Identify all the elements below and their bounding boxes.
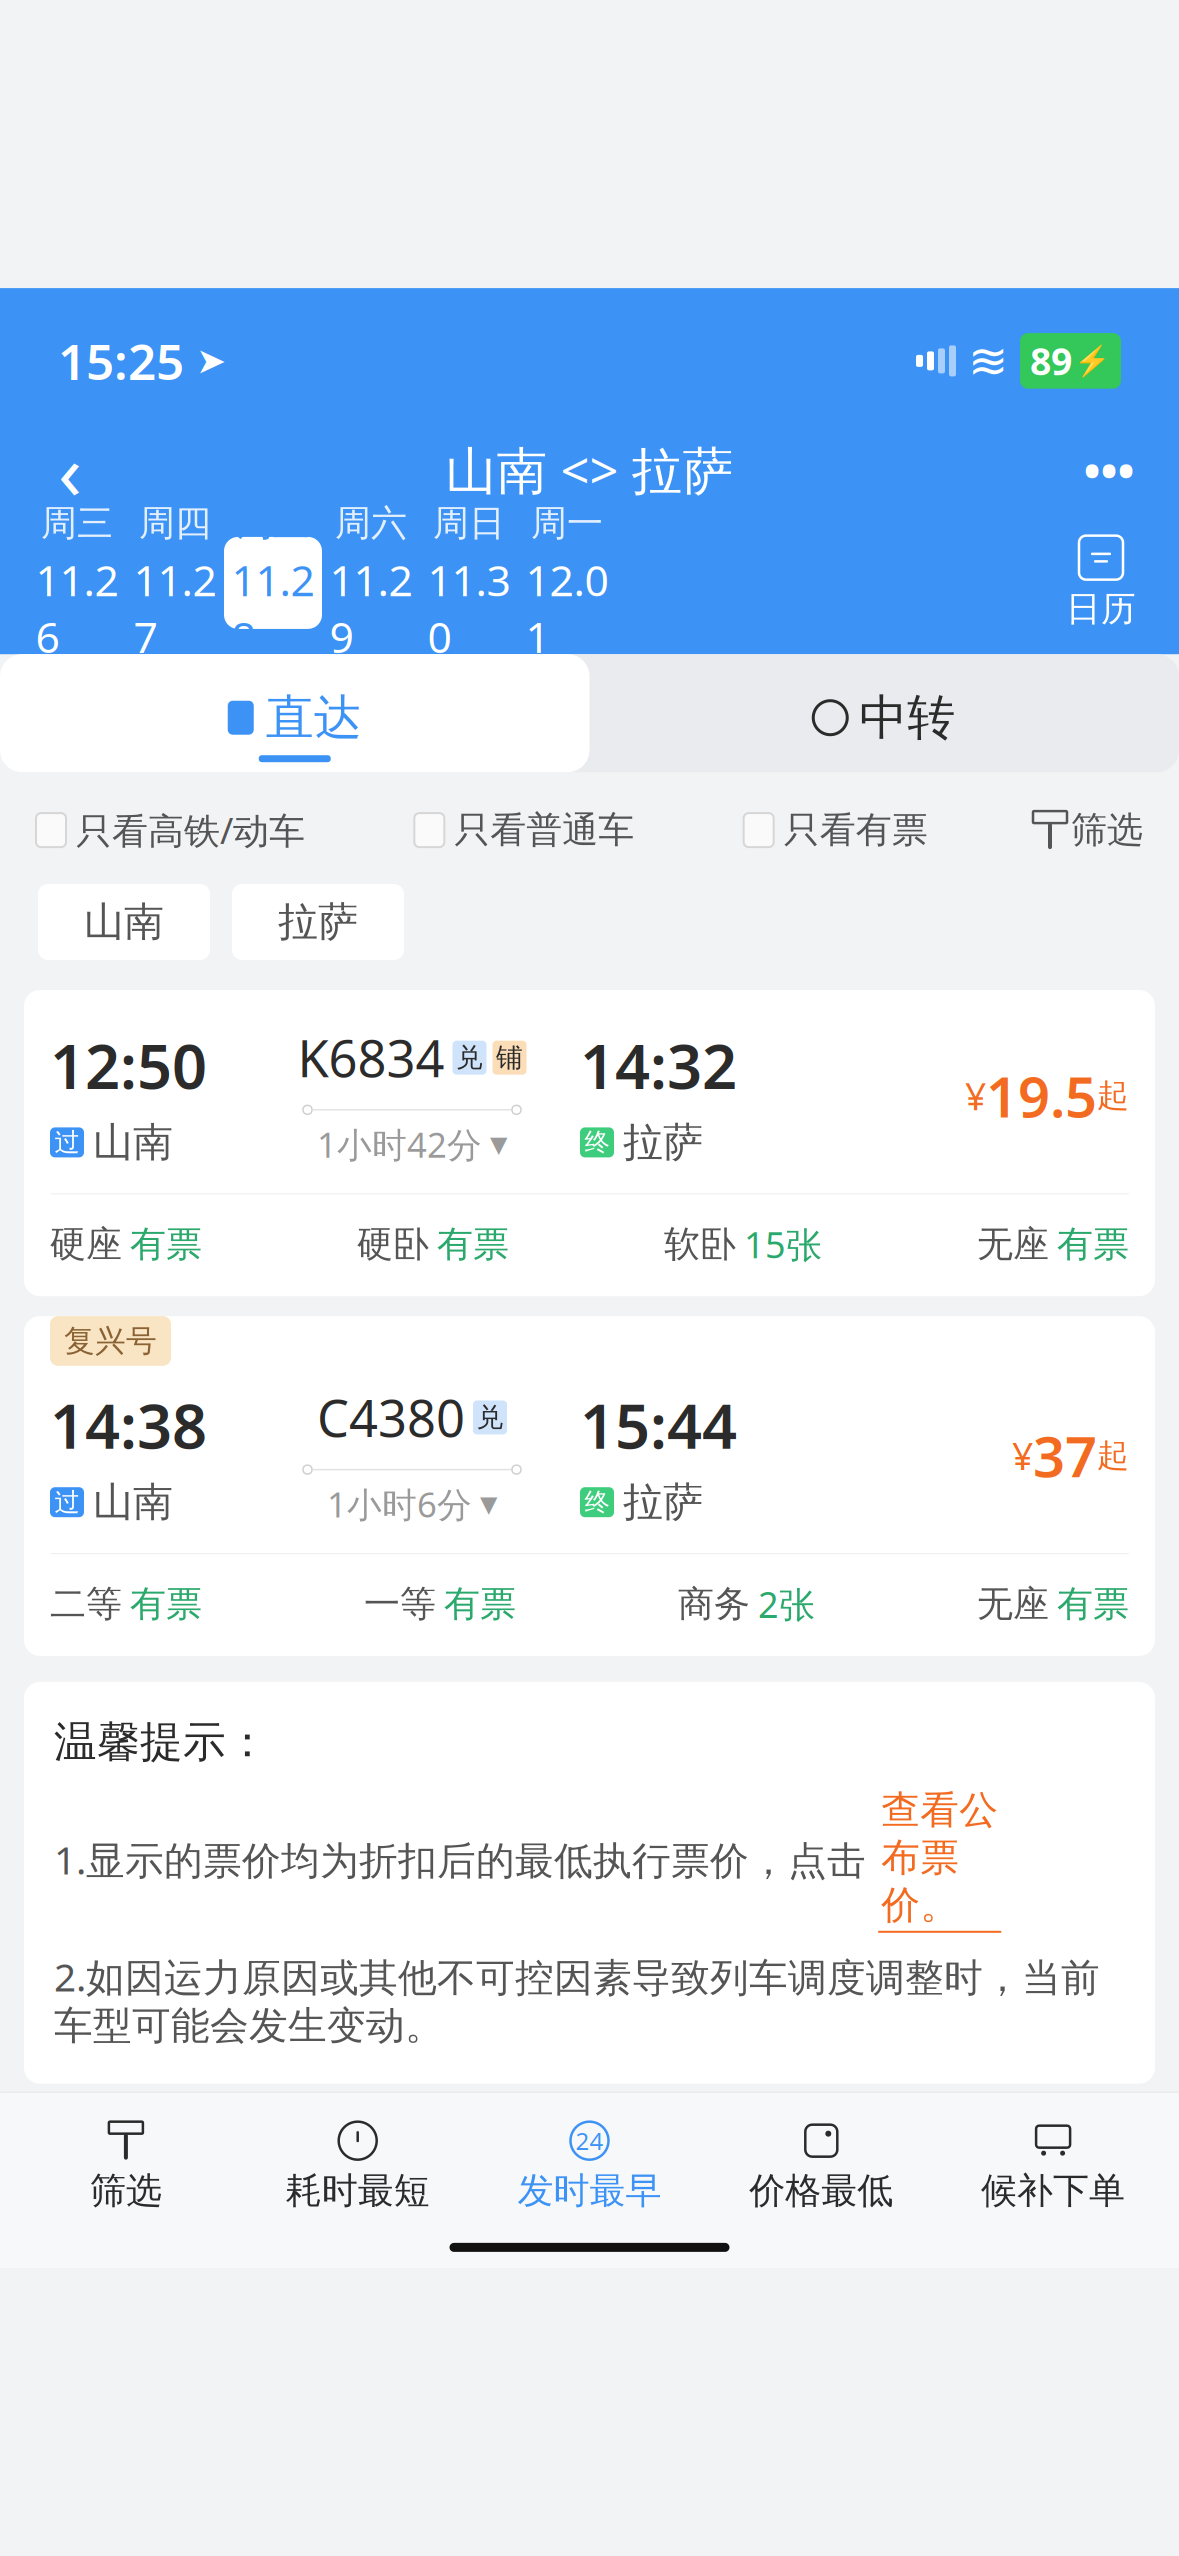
staticText: 有票 bbox=[437, 1222, 509, 1266]
staticText: 直达 bbox=[266, 688, 362, 747]
staticText: 终 bbox=[584, 1127, 609, 1158]
staticText: 二等 bbox=[50, 1582, 122, 1626]
button[interactable]: 筛选 bbox=[1037, 808, 1143, 852]
staticText: 有票 bbox=[444, 1582, 516, 1626]
staticText: 只看有票 bbox=[784, 808, 928, 852]
staticText: 复兴号 bbox=[64, 1322, 157, 1360]
staticText: 起 bbox=[1097, 1076, 1129, 1115]
staticText: C4380 bbox=[317, 1384, 465, 1451]
button[interactable]: 更多 bbox=[1069, 430, 1149, 510]
button[interactable]: 24 bbox=[474, 2111, 705, 2221]
button[interactable]: 周六 bbox=[322, 537, 420, 629]
staticText: 商务 bbox=[678, 1582, 750, 1626]
staticText: 2.如因运力原因或其他不可控因素导致列车调度调整时，当前车型可能会发生变动。 bbox=[54, 1951, 1100, 2050]
staticText: 山南 bbox=[93, 1478, 173, 1527]
staticText: 14:38 bbox=[50, 1384, 207, 1466]
staticText: 拉萨 bbox=[623, 1478, 703, 1527]
staticText: ≋ bbox=[968, 334, 1008, 388]
staticText: 候补下单 bbox=[981, 2169, 1125, 2213]
staticText: ➤ bbox=[196, 340, 226, 381]
staticText: 周一 bbox=[531, 501, 603, 545]
staticText: K6834 bbox=[297, 1024, 444, 1091]
button[interactable]: 候补下单 bbox=[937, 2111, 1169, 2221]
staticText: 15张 bbox=[744, 1220, 822, 1268]
staticText: ••• bbox=[1083, 439, 1134, 500]
staticText: 无座 bbox=[977, 1582, 1049, 1626]
button[interactable]: 拉萨 bbox=[232, 884, 404, 960]
button[interactable]: 只看有票 bbox=[744, 808, 928, 852]
staticText: 山南 bbox=[93, 1118, 173, 1167]
staticText: ▼ bbox=[490, 1131, 507, 1157]
staticText: 发时最早 bbox=[517, 2169, 661, 2213]
staticText: ¥ bbox=[1012, 1431, 1033, 1480]
button[interactable]: 周日 bbox=[420, 537, 518, 629]
button[interactable]: 耗时最短 bbox=[242, 2111, 474, 2221]
staticText: 周五 bbox=[237, 501, 309, 545]
button[interactable]: 12:50 bbox=[24, 990, 1155, 1296]
button[interactable]: 周一 bbox=[518, 537, 616, 629]
staticText: 硬卧 bbox=[357, 1222, 429, 1266]
staticText: ¥ bbox=[965, 1071, 986, 1120]
button[interactable]: 日历 bbox=[1051, 536, 1151, 630]
staticText: ▼ bbox=[480, 1491, 497, 1517]
staticText: 11.27 bbox=[133, 551, 216, 665]
staticText: 起 bbox=[1097, 1436, 1129, 1475]
button[interactable]: 价格最低 bbox=[705, 2111, 937, 2221]
button[interactable]: 周五 bbox=[224, 537, 322, 629]
button[interactable]: 查看公布票价。 bbox=[878, 1786, 1001, 1933]
staticText: 山南 bbox=[84, 897, 164, 946]
staticText: 1小时42分 bbox=[317, 1121, 482, 1167]
staticText: 过 bbox=[54, 1487, 79, 1518]
staticText: 周日 bbox=[433, 501, 505, 545]
staticText: 37 bbox=[1033, 1418, 1097, 1493]
staticText: 兑 bbox=[476, 1401, 503, 1434]
button[interactable]: 直达 bbox=[0, 654, 589, 772]
staticText: ⚡ bbox=[1074, 344, 1111, 378]
staticText: 温馨提示： bbox=[54, 1716, 269, 1768]
staticText: 拉萨 bbox=[623, 1118, 703, 1167]
staticText: 山南 <> 拉萨 bbox=[445, 436, 733, 503]
staticText: 终 bbox=[584, 1487, 609, 1518]
staticText: 无座 bbox=[977, 1222, 1049, 1266]
staticText: 有票 bbox=[130, 1222, 202, 1266]
staticText: 价格最低 bbox=[749, 2169, 893, 2213]
staticText: 只看高铁/动车 bbox=[76, 806, 305, 854]
staticText: 一等 bbox=[364, 1582, 436, 1626]
button[interactable]: 周三 bbox=[28, 537, 126, 629]
staticText: 周四 bbox=[139, 501, 211, 545]
staticText: 耗时最短 bbox=[286, 2169, 430, 2213]
staticText: 筛选 bbox=[1071, 808, 1143, 852]
staticText: ‹ bbox=[58, 418, 82, 521]
button[interactable]: 只看高铁/动车 bbox=[36, 806, 305, 854]
staticText: 1小时6分 bbox=[327, 1481, 472, 1527]
staticText: 15:44 bbox=[580, 1384, 737, 1466]
staticText: 周六 bbox=[335, 501, 407, 545]
staticText: 11.30 bbox=[427, 551, 510, 665]
staticText: 11.28 bbox=[231, 551, 314, 665]
staticText: 硬座 bbox=[50, 1222, 122, 1266]
staticText: 89 bbox=[1030, 336, 1072, 386]
staticText: 24 bbox=[575, 2125, 603, 2157]
button[interactable]: 中转 bbox=[589, 654, 1179, 772]
staticText: 铺 bbox=[496, 1041, 523, 1074]
button[interactable]: 复兴号 bbox=[24, 1316, 1155, 1656]
staticText: 1.显示的票价均为折扣后的最低执行票价，点击 bbox=[54, 1834, 878, 1885]
staticText: 15:25 bbox=[58, 328, 184, 394]
button[interactable]: 山南 bbox=[38, 884, 210, 960]
button[interactable]: 筛选 bbox=[10, 2111, 242, 2221]
staticText: 有票 bbox=[130, 1582, 202, 1626]
staticText: 兑 bbox=[456, 1041, 483, 1074]
button[interactable]: 周四 bbox=[126, 537, 224, 629]
staticText: 14:32 bbox=[580, 1024, 737, 1106]
button[interactable]: 只看普通车 bbox=[414, 808, 634, 852]
staticText: 软卧 bbox=[664, 1222, 736, 1266]
button[interactable]: 返回 bbox=[30, 430, 110, 510]
staticText: 2张 bbox=[758, 1580, 815, 1628]
staticText: 19.5 bbox=[986, 1058, 1097, 1133]
staticText: 12:50 bbox=[50, 1024, 207, 1106]
staticText: 拉萨 bbox=[278, 897, 358, 946]
staticText: 过 bbox=[54, 1127, 79, 1158]
staticText: 11.29 bbox=[329, 551, 412, 665]
staticText: 有票 bbox=[1057, 1582, 1129, 1626]
staticText: 周三 bbox=[41, 501, 113, 545]
